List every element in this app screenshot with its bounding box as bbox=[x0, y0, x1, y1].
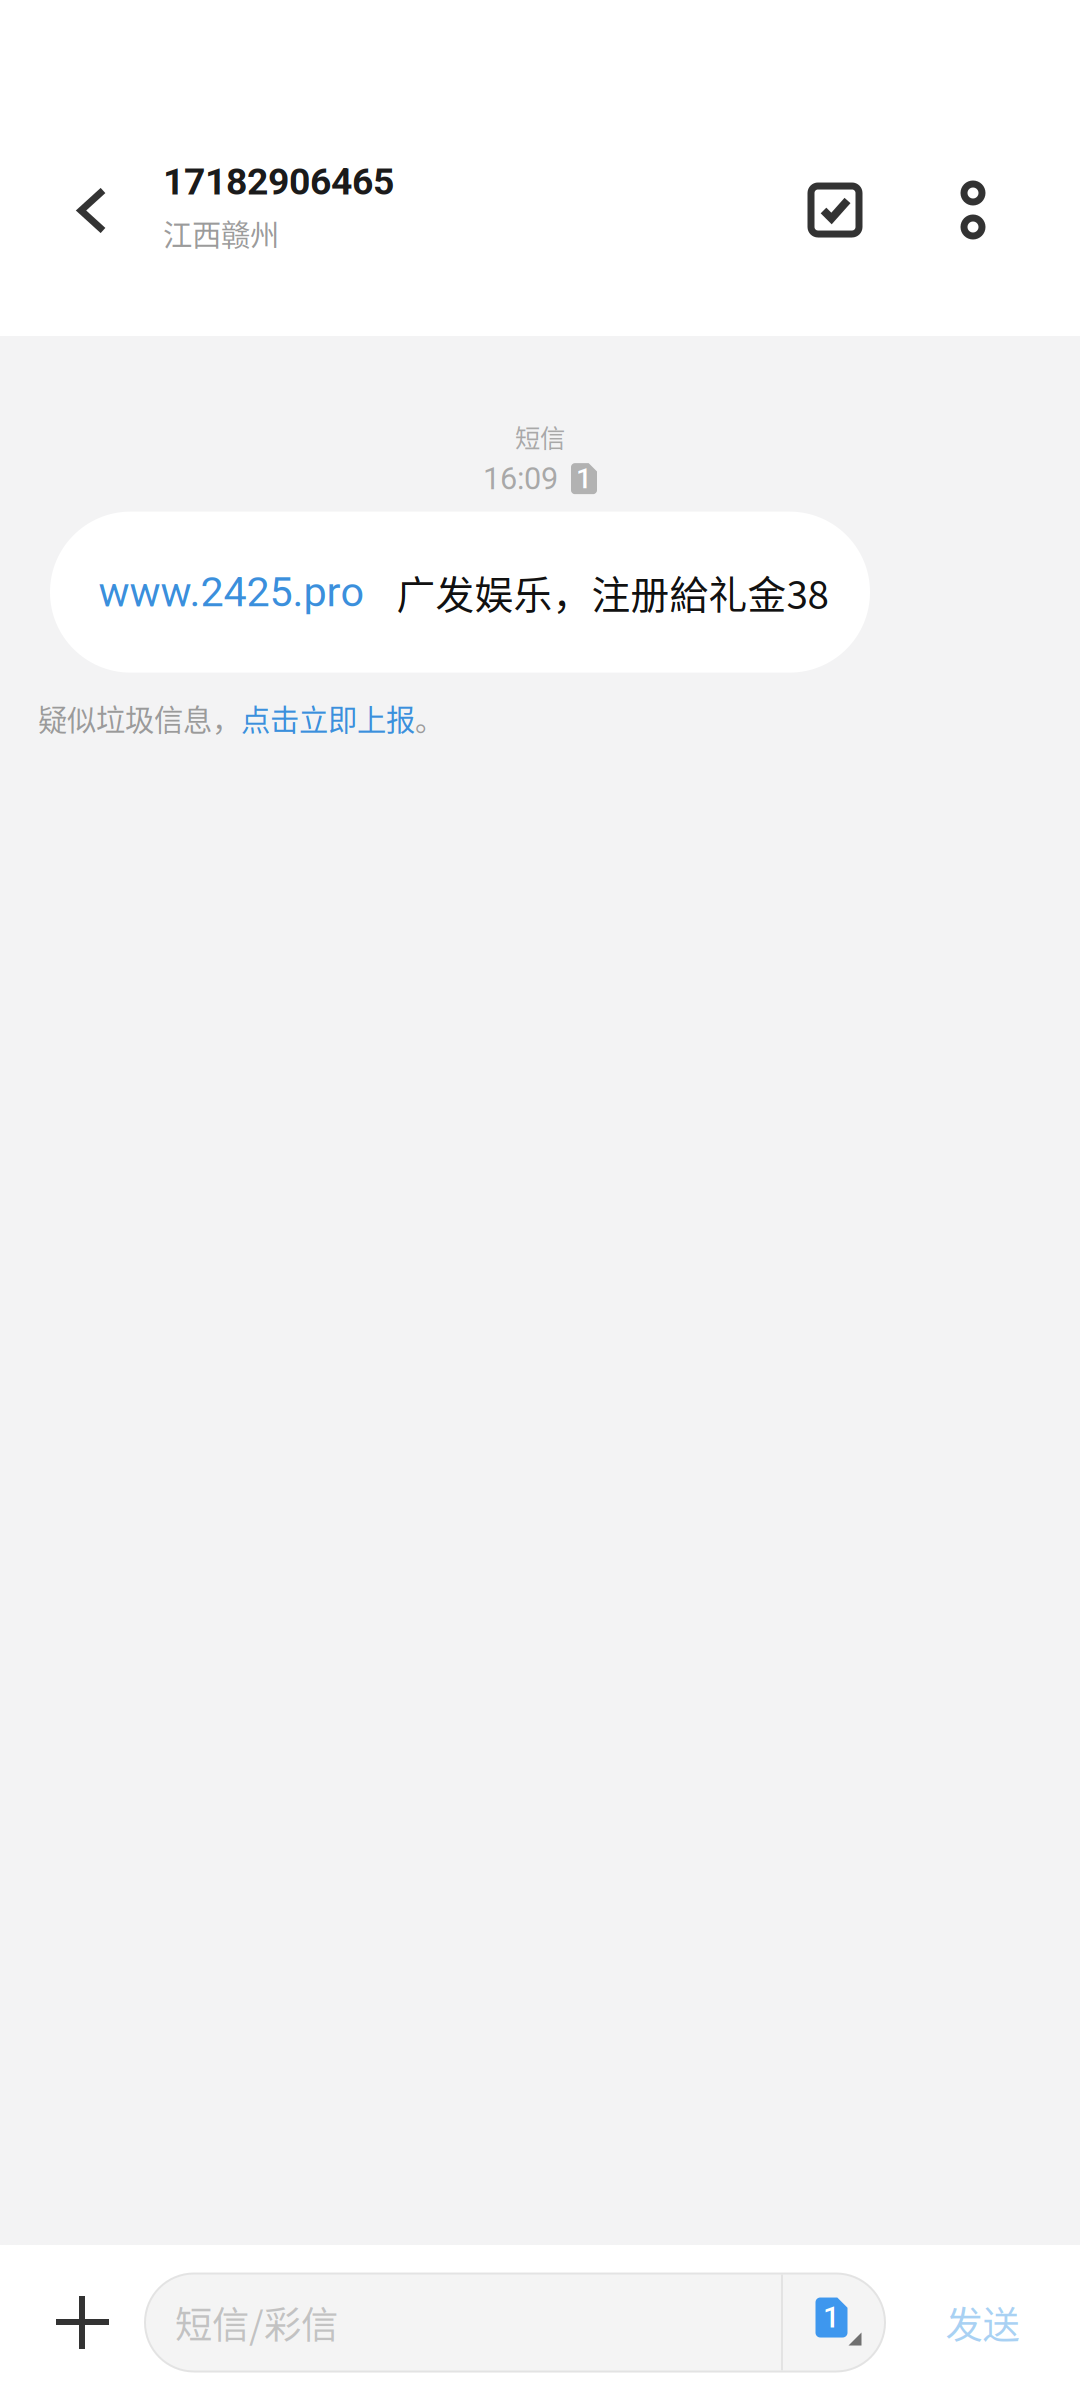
staticText: 江西赣州 bbox=[163, 212, 279, 254]
button[interactable]: 点击立即上报 bbox=[241, 697, 415, 739]
staticText: 发送 bbox=[945, 2295, 1019, 2350]
button[interactable]: Add attachment bbox=[0, 2245, 145, 2400]
staticText: 点击立即上报 bbox=[241, 697, 415, 739]
staticText: www.2425.pro bbox=[98, 568, 364, 616]
staticText: 1 bbox=[823, 2300, 840, 2335]
button[interactable]: www.2425.pro bbox=[50, 512, 870, 673]
staticText: 16:09 bbox=[483, 461, 558, 497]
staticText: 疑似垃圾信息， bbox=[38, 697, 241, 739]
staticText: 1 bbox=[576, 462, 592, 495]
button[interactable]: 发送 bbox=[885, 2245, 1080, 2400]
staticText: 17182906465 bbox=[163, 160, 394, 204]
staticText: 短信 bbox=[515, 418, 565, 455]
button[interactable]: Choose SIM card bbox=[793, 2273, 885, 2371]
button[interactable]: Select messages bbox=[765, 139, 908, 275]
staticText: 短信/彩信 bbox=[175, 2295, 338, 2350]
button[interactable]: More options bbox=[908, 139, 1080, 275]
button[interactable]: Back bbox=[0, 138, 184, 275]
staticText: 。 bbox=[415, 697, 444, 739]
staticText: 广发娱乐，注册給礼金38 bbox=[396, 564, 828, 620]
